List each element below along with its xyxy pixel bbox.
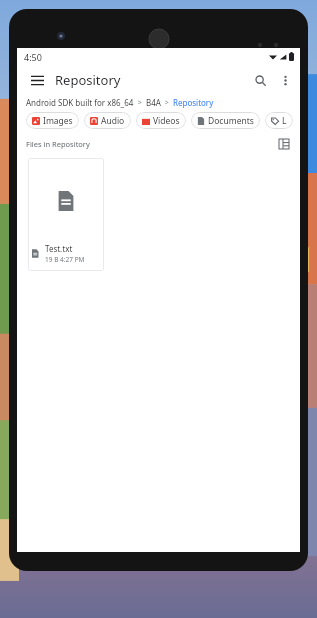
button[interactable]: Repository: [173, 97, 214, 108]
staticText: Files in Repository: [26, 139, 90, 149]
button[interactable]: Audio: [84, 112, 131, 129]
button[interactable]: B4A: [146, 97, 161, 108]
staticText: Images: [43, 115, 73, 127]
button[interactable]: Test.txt: [28, 158, 104, 271]
staticText: Audio: [101, 115, 125, 127]
staticText: 4:50: [24, 51, 42, 63]
button[interactable]: Search: [247, 67, 273, 93]
button[interactable]: Documents: [191, 112, 260, 129]
staticText: Test.txt: [45, 243, 73, 254]
staticText: 19 B 4:27 PM: [45, 255, 85, 264]
button[interactable]: Images: [26, 112, 79, 129]
button[interactable]: L: [265, 112, 293, 129]
staticText: L: [282, 115, 287, 127]
button[interactable]: Android SDK built for x86_64: [26, 97, 134, 108]
staticText: Videos: [153, 115, 180, 127]
staticText: Repository: [55, 71, 121, 89]
staticText: >: [134, 98, 146, 108]
staticText: Documents: [208, 115, 254, 127]
staticText: >: [161, 98, 173, 108]
button[interactable]: More options: [273, 68, 297, 92]
button[interactable]: Open navigation drawer: [23, 66, 51, 94]
button[interactable]: Change view layout: [276, 136, 292, 152]
button[interactable]: Videos: [136, 112, 186, 129]
